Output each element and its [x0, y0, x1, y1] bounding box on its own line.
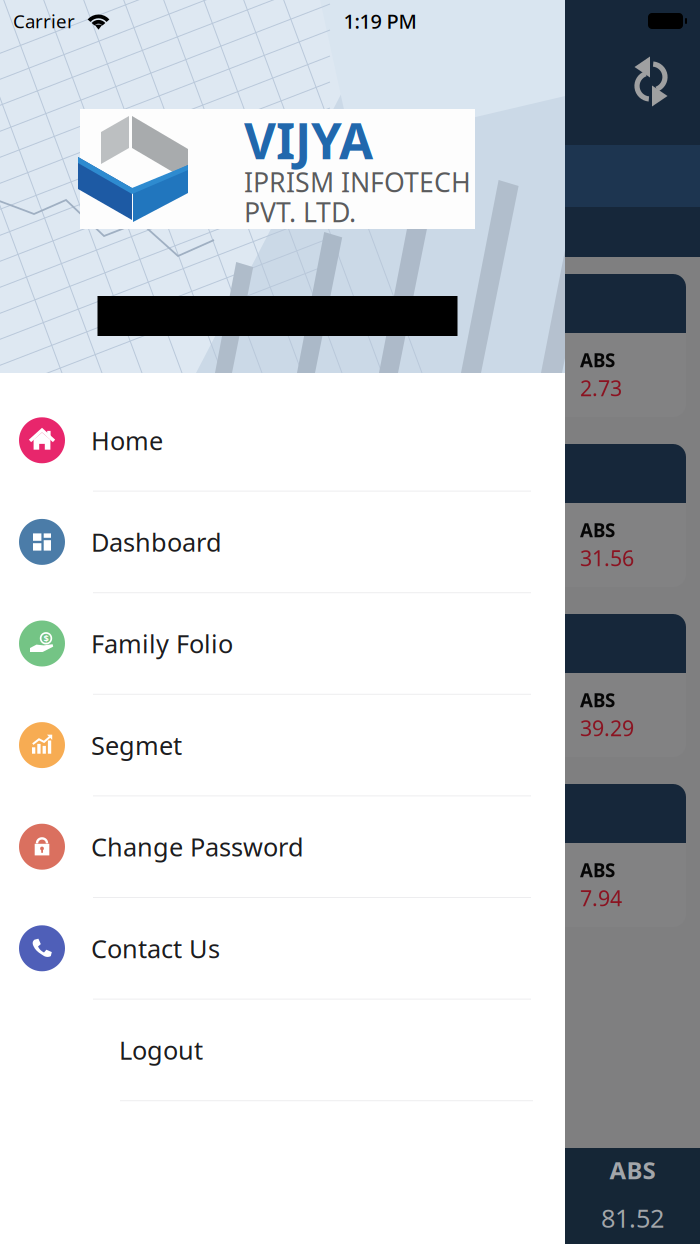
- staticText: PVT. LTD.: [244, 194, 356, 230]
- staticText: Segmet: [91, 728, 182, 762]
- staticText: ABS: [580, 518, 615, 542]
- button[interactable]: Refresh: [620, 0, 700, 145]
- button[interactable]: $: [0, 593, 565, 695]
- button[interactable]: Change Password: [0, 796, 565, 898]
- staticText: ABS: [580, 688, 615, 712]
- staticText: Carrier: [13, 9, 75, 33]
- staticText: $: [43, 632, 48, 644]
- button[interactable]: Home: [0, 390, 565, 492]
- staticText: ABS: [609, 1154, 655, 1186]
- staticText: ABS: [580, 858, 615, 882]
- staticText: Change Password: [91, 830, 304, 863]
- staticText: 1:19 PM: [343, 8, 416, 34]
- staticText: Family Folio: [91, 627, 233, 660]
- staticText: Logout: [119, 1033, 203, 1067]
- button[interactable]: Segmet: [0, 695, 565, 796]
- staticText: Contact Us: [91, 931, 220, 965]
- staticText: 31.56: [580, 544, 634, 572]
- staticText: Home: [91, 423, 163, 457]
- staticText: Dashboard: [91, 525, 222, 559]
- staticText: 7.94: [580, 884, 622, 912]
- staticText: 39.29: [580, 714, 634, 742]
- staticText: ABS: [580, 348, 615, 372]
- staticText: 2.73: [580, 374, 622, 402]
- staticText: 81.52: [601, 1201, 664, 1235]
- button[interactable]: Dashboard: [0, 492, 565, 593]
- button[interactable]: Logout: [0, 1000, 565, 1101]
- staticText: IPRISM INFOTECH: [244, 164, 471, 200]
- button[interactable]: Contact Us: [0, 898, 565, 1000]
- staticText: VIJYA: [244, 107, 373, 173]
